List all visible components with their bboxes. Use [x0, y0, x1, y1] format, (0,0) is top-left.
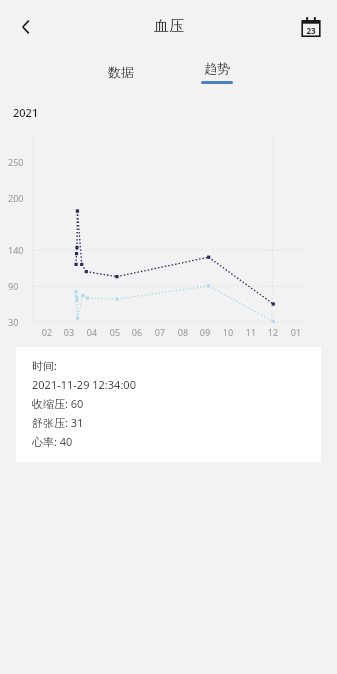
- staticText: 10: [219, 326, 237, 338]
- staticText: 舒张压: 31: [32, 415, 84, 430]
- staticText: 趋势: [204, 60, 230, 76]
- staticText: 04: [83, 326, 101, 338]
- button[interactable]: Back: [6, 7, 46, 47]
- staticText: 收缩压: 60: [32, 396, 84, 411]
- button[interactable]: 趋势: [192, 53, 242, 91]
- staticText: 08: [174, 326, 192, 338]
- button[interactable]: 数据: [96, 53, 146, 91]
- staticText: 2021: [13, 105, 39, 120]
- staticText: 2021-11-29 12:34:00: [32, 377, 136, 392]
- staticText: 数据: [108, 64, 134, 80]
- staticText: 200: [8, 192, 24, 204]
- staticText: 90: [8, 280, 19, 292]
- button[interactable]: 时间:: [16, 347, 321, 462]
- staticText: 时间:: [32, 358, 57, 373]
- staticText: 140: [8, 244, 24, 256]
- staticText: 02: [38, 326, 56, 338]
- staticText: 血压: [154, 17, 184, 36]
- staticText: 05: [106, 326, 124, 338]
- staticText: 11: [242, 326, 260, 338]
- staticText: 250: [8, 156, 24, 168]
- staticText: 06: [128, 326, 146, 338]
- staticText: 12: [264, 326, 282, 338]
- staticText: 07: [151, 326, 169, 338]
- staticText: 23: [306, 25, 316, 36]
- staticText: 01: [287, 326, 305, 338]
- staticText: 03: [60, 326, 78, 338]
- staticText: 09: [196, 326, 214, 338]
- staticText: 30: [8, 316, 19, 328]
- button[interactable]: Calendar: [291, 7, 331, 47]
- staticText: 心率: 40: [32, 434, 73, 449]
